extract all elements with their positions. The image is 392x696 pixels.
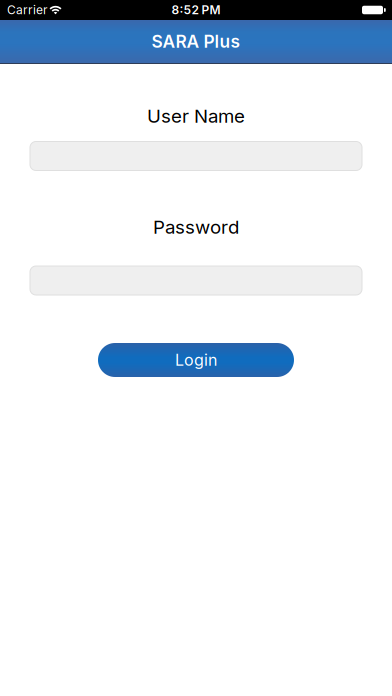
staticText: User Name [147, 105, 245, 127]
staticText: Password [153, 216, 239, 238]
staticText: Carrier [7, 3, 48, 17]
staticText: SARA Plus [151, 31, 240, 52]
button[interactable]: Login [98, 343, 294, 377]
staticText: Login [175, 351, 217, 369]
staticText: 8:52 PM [171, 3, 220, 17]
